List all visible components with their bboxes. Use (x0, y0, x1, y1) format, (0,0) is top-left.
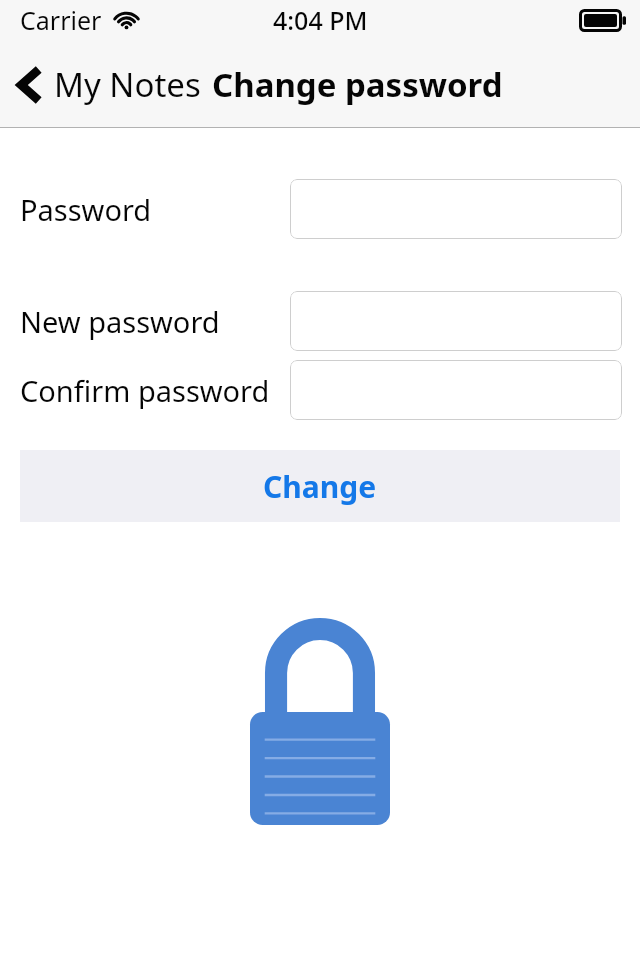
button[interactable]: New password field (290, 291, 622, 351)
button[interactable]: Back to My Notes (15, 56, 204, 113)
button[interactable]: Confirm password field (290, 360, 622, 420)
staticText: Change (263, 466, 377, 507)
staticText: Carrier (20, 3, 102, 37)
staticText: 4:04 PM (273, 3, 368, 37)
staticText: My Notes (54, 62, 201, 107)
staticText: New password (20, 302, 220, 341)
staticText: Confirm password (20, 371, 270, 410)
button[interactable]: Password field (290, 179, 622, 239)
staticText: Password (20, 190, 152, 229)
button[interactable]: Change (20, 450, 620, 522)
staticText: Change password (212, 62, 503, 107)
